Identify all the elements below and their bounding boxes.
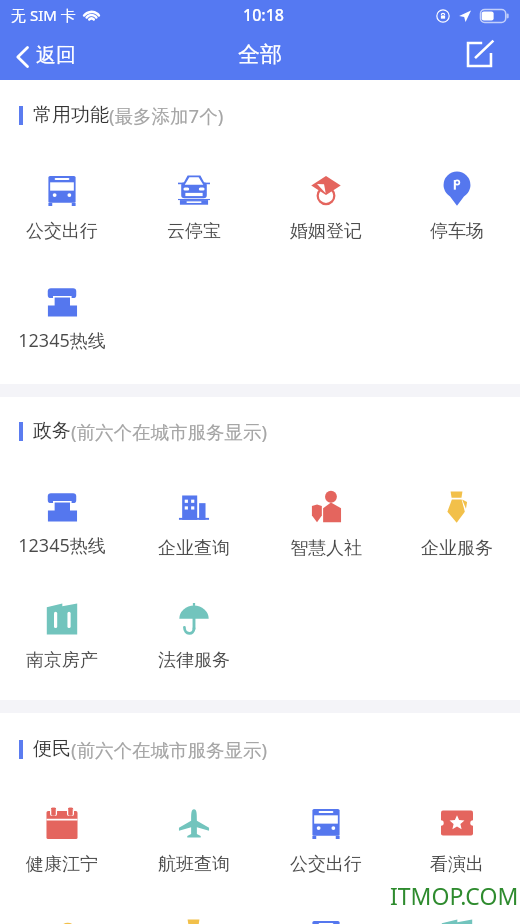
button[interactable]: 看演出 [391,785,520,883]
staticText: 公交出行 [26,220,98,243]
button[interactable]: 健康江宁 [0,785,128,883]
staticText: 常用功能 [33,103,109,127]
staticText: 便民 [33,737,71,761]
button[interactable]: 企业服务 [391,469,520,567]
staticText: 12345热线 [18,533,106,558]
button[interactable] [260,897,392,924]
staticText: 航班查询 [158,853,230,876]
button[interactable]: 云停宝 [128,152,260,250]
staticText: 南京房产 [26,649,98,672]
button[interactable]: 公交出行 [0,152,128,250]
staticText: (最多添加7个) [109,103,224,128]
staticText: 10:18 [243,4,284,26]
button[interactable]: 航班查询 [128,785,260,883]
staticText: 智慧人社 [290,537,362,560]
button[interactable]: 法律服务 [128,581,260,679]
staticText: 云停宝 [167,220,221,243]
staticText: 看演出 [430,853,484,876]
staticText: 无 SIM 卡 [11,5,76,25]
button[interactable]: 公交出行 [260,785,392,883]
staticText: ITMOP.COM [390,880,519,911]
staticText: 公交出行 [290,853,362,876]
staticText: 返回 [36,43,76,68]
staticText: 健康江宁 [26,853,98,876]
button[interactable]: 企业查询 [128,469,260,567]
button[interactable]: 南京房产 [0,581,128,679]
staticText: 企业服务 [421,537,493,560]
staticText: (前六个在城市服务显示) [71,419,268,444]
button[interactable]: 智慧人社 [260,469,392,567]
button[interactable]: 返回 [0,36,90,77]
button[interactable]: 12345热线 [0,264,128,362]
staticText: 停车场 [430,220,484,243]
button[interactable]: 停车场 [391,152,520,250]
staticText: 12345热线 [18,328,106,353]
staticText: 企业查询 [158,537,230,560]
button[interactable] [391,897,520,924]
staticText: (前六个在城市服务显示) [71,737,268,762]
button[interactable] [128,897,260,924]
button[interactable]: Edit [452,33,520,79]
staticText: 婚姻登记 [290,220,362,243]
button[interactable] [0,897,128,924]
button[interactable]: 12345热线 [0,469,128,567]
staticText: 全部 [238,41,282,69]
button[interactable]: 婚姻登记 [260,152,392,250]
staticText: 法律服务 [158,649,230,672]
staticText: 政务 [33,419,71,443]
